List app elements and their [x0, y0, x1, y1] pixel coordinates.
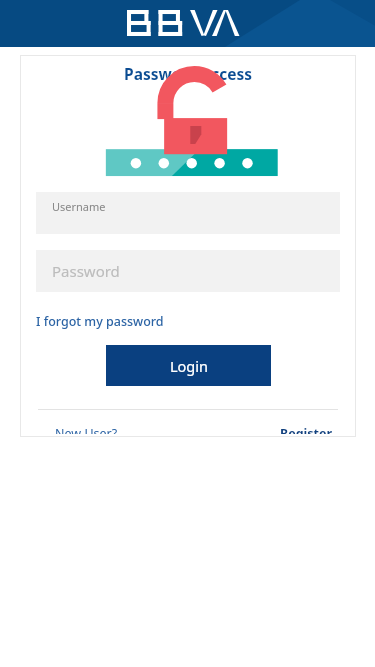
staticText: Password	[52, 261, 120, 281]
button[interactable]: New User?	[38, 422, 118, 437]
button[interactable]: Username	[36, 192, 340, 234]
button[interactable]: Password	[36, 250, 340, 292]
staticText: Login	[170, 356, 208, 376]
button[interactable]: Login	[106, 345, 271, 386]
button[interactable]: Register	[280, 422, 338, 437]
staticText: Username	[52, 199, 106, 214]
staticText: Password access	[20, 63, 356, 84]
button[interactable]: I forgot my password	[36, 311, 164, 332]
staticText: Register	[280, 425, 333, 434]
staticText: New User?	[55, 425, 118, 434]
other: BBVA	[127, 10, 249, 36]
staticText: I forgot my password	[36, 313, 164, 330]
